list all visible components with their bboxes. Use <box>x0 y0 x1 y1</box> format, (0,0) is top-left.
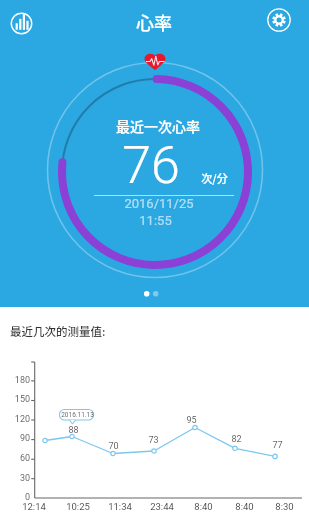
staticText: 2016/11/25 <box>124 196 194 211</box>
button[interactable] <box>258 0 302 44</box>
staticText: 60 <box>19 453 30 464</box>
staticText: 心率 <box>136 9 172 35</box>
button[interactable] <box>8 0 52 44</box>
staticText: 10:25 <box>66 501 90 512</box>
staticText: 76 <box>122 135 180 196</box>
staticText: 11:55 <box>139 213 172 228</box>
staticText: 最近几次的测量值: <box>10 323 106 340</box>
staticText: 70 <box>108 441 119 452</box>
staticText: 次/分 <box>201 170 228 186</box>
staticText: 2016.11.13 <box>61 411 94 419</box>
staticText: 73 <box>148 435 159 446</box>
staticText: 180 <box>14 375 30 386</box>
staticText: 0 <box>24 492 30 503</box>
staticText: 23:44 <box>150 501 174 512</box>
staticText: 8:40 <box>235 501 254 512</box>
staticText: 12:14 <box>22 501 46 512</box>
staticText: 82 <box>231 434 242 445</box>
staticText: 150 <box>14 394 30 405</box>
staticText: 120 <box>14 414 30 425</box>
staticText: 88 <box>68 425 79 436</box>
staticText: 30 <box>19 473 30 484</box>
staticText: 77 <box>272 440 283 451</box>
staticText: 8:40 <box>194 501 213 512</box>
staticText: 最近一次心率 <box>116 116 200 136</box>
staticText: 8:30 <box>275 501 294 512</box>
staticText: 90 <box>19 433 30 444</box>
staticText: 95 <box>186 415 197 426</box>
staticText: 11:34 <box>108 501 132 512</box>
